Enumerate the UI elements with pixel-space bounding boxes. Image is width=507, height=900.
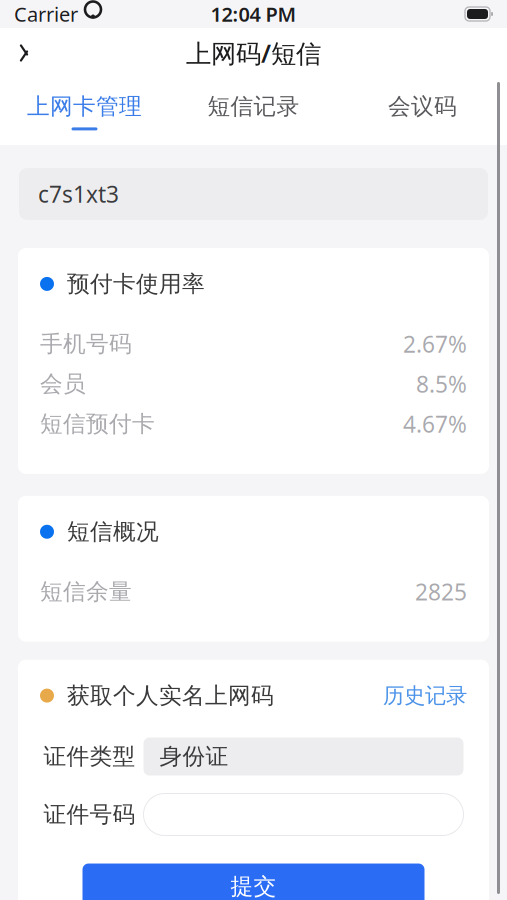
staticText: 会员	[40, 370, 86, 398]
button[interactable]: 会议码	[338, 78, 507, 145]
button[interactable]: 上网卡管理	[0, 78, 169, 145]
staticText: 获取个人实名上网码	[67, 682, 274, 709]
staticText: 预付卡使用率	[67, 270, 205, 298]
button[interactable]: 短信记录	[169, 78, 338, 145]
staticText: 短信预付卡	[40, 410, 155, 438]
staticText: 短信余量	[40, 578, 132, 606]
staticText: 上网码/短信	[186, 36, 321, 70]
staticText: 2.67%	[403, 329, 467, 359]
staticText: 短信概况	[67, 518, 159, 546]
staticText: 上网卡管理	[27, 93, 142, 120]
staticText: 证件号码	[43, 801, 135, 828]
staticText: c7s1xt3	[38, 179, 119, 209]
staticText: Carrier	[14, 1, 78, 27]
staticText: 身份证	[159, 743, 228, 770]
staticText: 4.67%	[403, 409, 467, 439]
staticText: 会议码	[388, 93, 457, 120]
button[interactable]: 历史记录	[383, 682, 467, 709]
staticText: 证件类型	[43, 743, 135, 770]
staticText: 短信记录	[207, 93, 299, 120]
staticText: 历史记录	[383, 682, 467, 709]
staticText: 8.5%	[416, 369, 467, 399]
button[interactable]: Back	[0, 28, 48, 78]
button[interactable]: 提交	[82, 863, 424, 900]
staticText: 手机号码	[40, 330, 132, 358]
staticText: 12:04 PM	[210, 1, 296, 27]
staticText: 提交	[230, 873, 276, 900]
staticText: 2825	[415, 577, 467, 607]
